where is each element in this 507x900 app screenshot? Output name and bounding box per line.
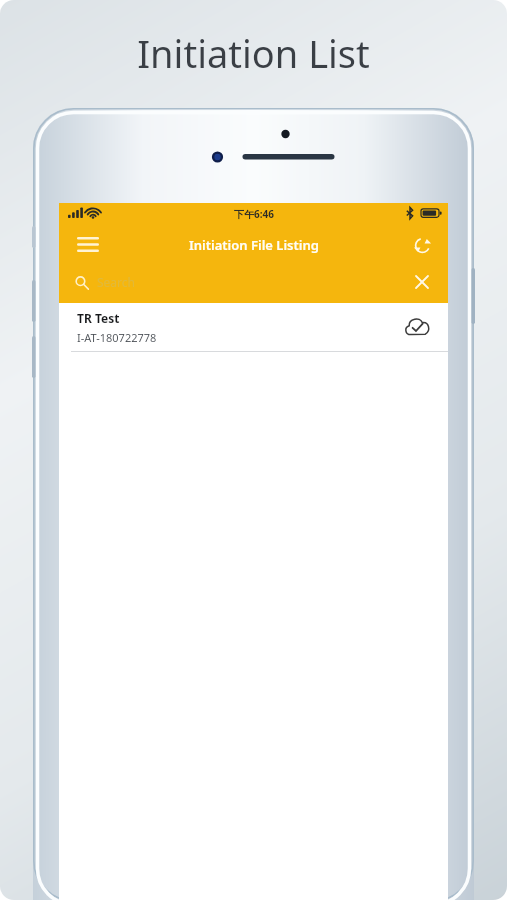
staticText: I-AT-180722778: [77, 330, 157, 345]
button[interactable]: Refresh: [406, 229, 438, 261]
other: Synced: [400, 310, 434, 344]
staticText: 下午6:46: [234, 207, 274, 221]
staticText: TR Test: [77, 310, 120, 326]
button[interactable]: Clear search: [406, 266, 438, 298]
button[interactable]: Menu: [71, 228, 105, 262]
staticText: Initiation File Listing: [189, 236, 319, 254]
staticText: Initiation List: [137, 27, 370, 79]
staticText: Search: [97, 274, 135, 290]
button[interactable]: TR Test: [59, 303, 448, 352]
